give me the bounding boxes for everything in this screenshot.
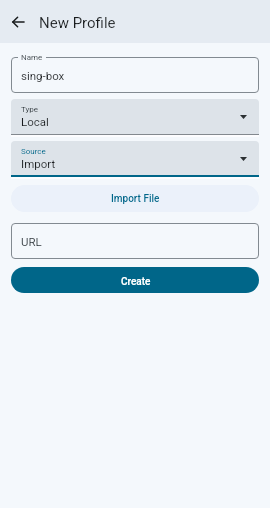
staticText: Import: [21, 157, 56, 170]
staticText: New Profile: [39, 14, 116, 32]
button[interactable]: URL: [11, 223, 259, 259]
button[interactable]: Import File: [11, 185, 259, 212]
staticText: Name: [21, 53, 43, 62]
button[interactable]: Create: [11, 267, 259, 293]
staticText: sing-box: [21, 69, 65, 82]
button[interactable]: Back: [0, 3, 38, 41]
button[interactable]: Type: [11, 99, 259, 137]
staticText: Create: [121, 276, 151, 288]
button[interactable]: Source: [11, 141, 259, 179]
staticText: Local: [21, 115, 49, 128]
staticText: Source: [21, 147, 46, 156]
button[interactable]: Name: [11, 57, 259, 93]
staticText: URL: [21, 235, 42, 248]
staticText: Import File: [111, 193, 160, 205]
staticText: Type: [21, 105, 39, 114]
